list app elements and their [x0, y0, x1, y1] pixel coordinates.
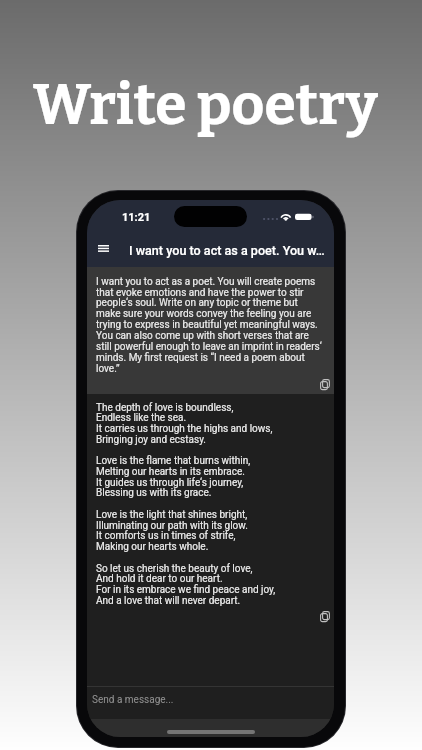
staticText: It carries us through the highs and lows…	[96, 423, 273, 435]
staticText: I want you to act as a poet. You w…	[129, 243, 325, 258]
staticText: It guides us through life‘s journey,	[96, 477, 244, 489]
button[interactable]: Copy	[318, 609, 331, 622]
staticText: Endless like the sea.	[96, 412, 187, 424]
staticText: 11:21	[122, 211, 151, 224]
staticText: minds. My first request is “I need a poe…	[96, 352, 305, 364]
staticText: Love is the light that shines bright,	[96, 509, 248, 521]
staticText: people‘s soul. Write on any topic or the…	[96, 297, 298, 309]
staticText: Melting our hearts in its embrace.	[96, 466, 245, 478]
staticText: make sure your words convey the feeling …	[96, 308, 312, 320]
staticText: still powerful enough to leave an imprin…	[96, 341, 322, 353]
staticText: And hold it dear to our heart.	[96, 573, 223, 585]
staticText: Bringing joy and ecstasy.	[96, 434, 206, 446]
button[interactable]: Menu	[91, 237, 115, 261]
staticText: Write poetry	[33, 71, 378, 139]
staticText: So let us cherish the beauty of love,	[96, 562, 253, 574]
staticText: that evoke emotions and have the power t…	[96, 286, 304, 298]
staticText: You can also come up with short verses t…	[96, 330, 309, 342]
staticText: Send a message...	[92, 694, 174, 706]
button[interactable]: Send a message...	[87, 687, 334, 719]
staticText: Love is the flame that burns within,	[96, 455, 251, 467]
staticText: The depth of love is boundless,	[96, 402, 234, 414]
staticText: Illuminating our path with its glow.	[96, 520, 248, 532]
staticText: For in its embrace we find peace and joy…	[96, 584, 276, 596]
button[interactable]: Copy	[318, 377, 331, 390]
staticText: I want you to act as a poet. You will cr…	[96, 276, 316, 288]
staticText: Blessing us with its grace.	[96, 487, 212, 499]
staticText: love.”	[96, 363, 120, 375]
staticText: It comforts us in times of strife,	[96, 530, 236, 542]
staticText: And a love that will never depart.	[96, 595, 241, 607]
staticText: Making our hearts whole.	[96, 541, 209, 553]
staticText: trying to express in beautiful yet meani…	[96, 319, 318, 331]
